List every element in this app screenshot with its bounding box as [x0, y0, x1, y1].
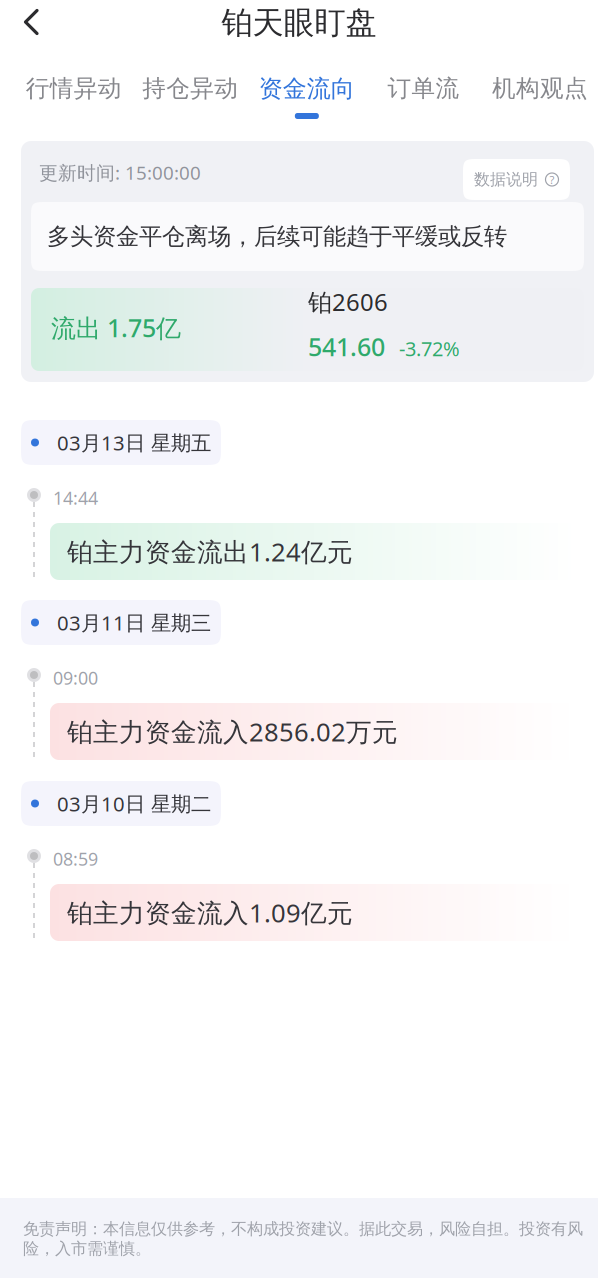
staticText: 03月11日 星期三: [57, 609, 211, 636]
staticText: ?: [549, 172, 554, 187]
button[interactable]: 行情异动: [15, 67, 132, 123]
staticText: 08:59: [53, 847, 98, 871]
staticText: 流出 1.75亿: [51, 311, 181, 344]
button[interactable]: 03月11日 星期三: [21, 600, 221, 645]
staticText: 铂主力资金流入2856.02万元: [67, 714, 398, 748]
staticText: 数据说明: [474, 170, 538, 189]
staticText: 541.60: [308, 330, 385, 363]
staticText: -3.72%: [399, 335, 460, 362]
button[interactable]: 持仓异动: [132, 67, 248, 123]
staticText: 09:00: [53, 666, 98, 690]
button[interactable]: 03月10日 星期二: [21, 781, 221, 826]
staticText: 铂主力资金流出1.24亿元: [67, 534, 353, 568]
button[interactable]: 资金流向: [248, 67, 365, 123]
staticText: 14:44: [53, 486, 98, 510]
staticText: 铂主力资金流入1.09亿元: [67, 895, 353, 929]
staticText: 03月10日 星期二: [57, 790, 211, 817]
button[interactable]: 数据说明: [463, 159, 570, 200]
staticText: 行情异动: [26, 74, 122, 103]
button[interactable]: 机构观点: [482, 67, 598, 123]
staticText: 多头资金平仓离场，后续可能趋于平缓或反转: [47, 222, 507, 251]
button[interactable]: Back: [1, 1, 61, 43]
staticText: 机构观点: [492, 74, 588, 103]
staticText: 订单流: [387, 74, 459, 103]
staticText: 持仓异动: [142, 74, 238, 103]
staticText: 免责声明：本信息仅供参考，不构成投资建议。据此交易，风险自担。投资有风险，入市需…: [23, 1219, 583, 1259]
button[interactable]: 03月13日 星期五: [21, 420, 221, 465]
staticText: 铂天眼盯盘: [221, 4, 376, 42]
staticText: 更新时间: 15:00:00: [39, 160, 201, 185]
staticText: 03月13日 星期五: [57, 429, 211, 456]
staticText: 铂2606: [308, 286, 388, 318]
staticText: 资金流向: [259, 74, 355, 103]
button[interactable]: 订单流: [365, 67, 482, 123]
